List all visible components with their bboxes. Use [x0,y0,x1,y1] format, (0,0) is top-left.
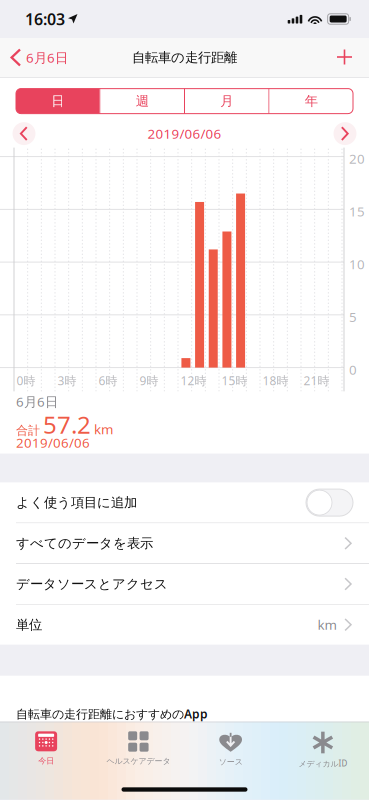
staticText: 自転車の走行距離におすすめのApp [16,706,208,722]
staticText: 日 [51,93,64,109]
staticText: 15時 [221,373,247,388]
staticText: 2019/06/06 [16,434,90,451]
staticText: よく使う項目に追加 [16,494,137,511]
staticText: データソースとアクセス [16,576,168,592]
button[interactable]: 今日 [0,722,92,775]
staticText: 9時 [139,373,158,388]
button[interactable]: 6月6日 [0,38,76,77]
button[interactable]: 日 [16,89,99,114]
staticText: 15 [349,202,365,220]
staticText: 6月6日 [16,393,58,410]
staticText: 18時 [262,373,288,388]
staticText: 6月6日 [26,49,68,66]
staticText: メディカルID [298,758,347,769]
staticText: ソース [219,757,243,767]
staticText: 月 [220,93,233,109]
button[interactable]: Next day [321,120,369,148]
staticText: 週 [136,93,149,109]
button[interactable]: Previous day [0,120,48,148]
staticText: 20 [349,150,365,167]
staticText: 単位 [16,616,42,633]
button[interactable]: 週 [100,89,184,114]
button[interactable]: よく使う項目に追加 [0,483,369,523]
button[interactable]: 単位 [0,605,369,645]
button[interactable]: 月 [185,89,268,114]
button[interactable]: ソース [184,722,277,775]
staticText: 今日 [38,756,54,766]
staticText: km [94,420,113,438]
button[interactable]: メディカルID [277,722,369,775]
staticText: km [317,616,336,633]
staticText: 合計 [16,423,40,438]
staticText: 6時 [98,373,117,388]
button[interactable]: データソースとアクセス [0,564,369,604]
button[interactable]: ヘルスケアデータ [92,722,184,775]
staticText: 21時 [303,373,329,388]
staticText: 自転車の走行距離 [132,49,237,66]
staticText: ヘルスケアデータ [106,756,170,766]
staticText: 5 [349,308,357,326]
staticText: 0時 [16,373,35,388]
staticText: 12時 [180,373,206,388]
button[interactable]: Add data [321,38,369,77]
staticText: 57.2 [43,409,91,440]
staticText: 10 [349,255,365,273]
staticText: 2019/06/06 [147,125,221,142]
staticText: すべてのデータを表示 [16,535,153,551]
staticText: 3時 [57,373,76,388]
staticText: 年 [305,93,318,109]
button[interactable]: 年 [269,89,353,114]
button[interactable]: すべてのデータを表示 [0,523,369,563]
staticText: 0 [349,361,357,378]
staticText: 16:03 [25,8,65,30]
